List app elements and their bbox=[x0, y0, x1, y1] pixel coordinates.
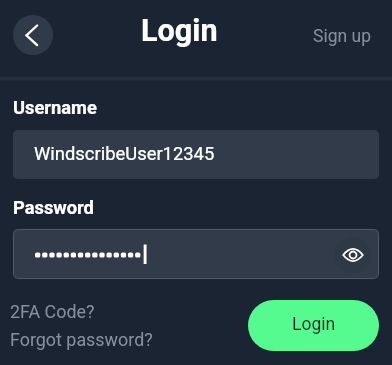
staticText: 2FA Code? bbox=[10, 301, 95, 322]
button[interactable]: Show password bbox=[335, 237, 371, 273]
button[interactable]: Forgot password? bbox=[3, 322, 160, 357]
staticText: WindscribeUser12345 bbox=[34, 143, 215, 165]
staticText: Login bbox=[141, 13, 218, 49]
button[interactable]: Sign up bbox=[299, 12, 385, 61]
button[interactable]: Show password bbox=[13, 229, 379, 279]
button[interactable]: Login bbox=[248, 300, 379, 351]
staticText: Login bbox=[292, 314, 336, 335]
staticText: Sign up bbox=[313, 26, 371, 47]
staticText: Password bbox=[13, 197, 94, 218]
button[interactable]: Back bbox=[13, 15, 53, 55]
button[interactable]: WindscribeUser12345 bbox=[13, 130, 379, 179]
staticText: Username bbox=[13, 97, 97, 118]
button[interactable]: 2FA Code? bbox=[3, 294, 102, 329]
staticText: Forgot password? bbox=[10, 329, 153, 350]
